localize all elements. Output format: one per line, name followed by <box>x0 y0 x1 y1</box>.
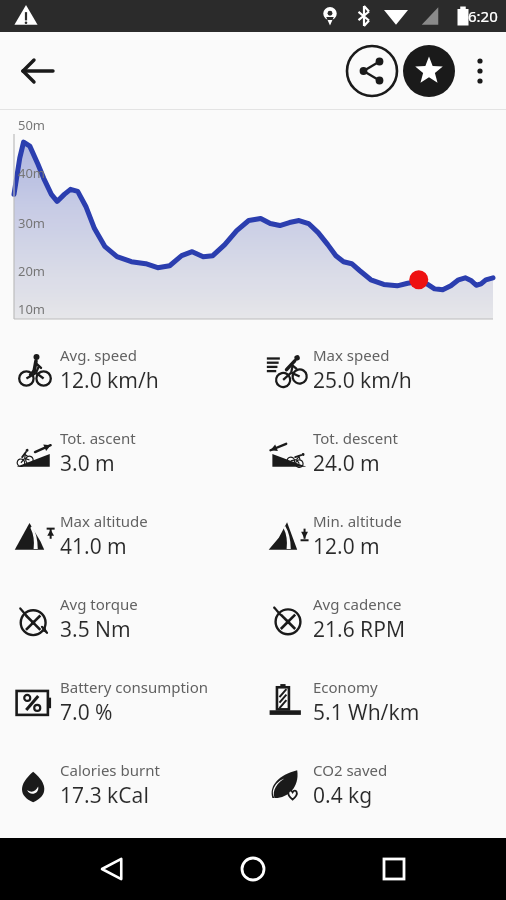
button[interactable]: Tot. descent <box>253 411 506 494</box>
staticText: 5.1 Wh/km <box>313 698 420 727</box>
staticText: 20m <box>18 262 46 280</box>
staticText: Avg cadence <box>313 594 402 614</box>
button[interactable]: Back <box>85 841 141 897</box>
button[interactable]: Favorite <box>400 42 458 100</box>
button[interactable]: CO2 saved <box>253 743 506 826</box>
button[interactable]: Home <box>225 841 281 897</box>
staticText: 24.0 m <box>313 449 380 478</box>
staticText: 17.3 kCal <box>60 781 149 810</box>
staticText: 7.0 % <box>60 698 113 727</box>
staticText: 10m <box>18 300 46 318</box>
staticText: Tot. descent <box>313 428 398 448</box>
staticText: CO2 saved <box>313 760 388 780</box>
button[interactable]: Back <box>12 45 64 97</box>
button[interactable]: Max speed <box>253 328 506 411</box>
button[interactable]: Avg torque <box>0 577 253 660</box>
staticText: Avg torque <box>60 594 138 614</box>
staticText: Min. altitude <box>313 511 402 531</box>
staticText: 41.0 m <box>60 532 127 561</box>
staticText: 6:20 <box>468 6 498 26</box>
button[interactable]: Battery consumption <box>0 660 253 743</box>
staticText: Max speed <box>313 345 390 365</box>
staticText: 12.0 m <box>313 532 380 561</box>
button[interactable]: Avg cadence <box>253 577 506 660</box>
button[interactable]: Avg. speed <box>0 328 253 411</box>
staticText: 40m <box>18 164 46 182</box>
staticText: 12.0 km/h <box>60 366 159 395</box>
staticText: 0.4 kg <box>313 781 373 810</box>
staticText: 25.0 km/h <box>313 366 412 395</box>
staticText: Avg. speed <box>60 345 137 365</box>
staticText: 50m <box>18 116 46 134</box>
button[interactable]: Tot. ascent <box>0 411 253 494</box>
staticText: Max altitude <box>60 511 148 531</box>
staticText: Economy <box>313 677 378 697</box>
staticText: Battery consumption <box>60 677 209 697</box>
staticText: 3.0 m <box>60 449 115 478</box>
staticText: Calories burnt <box>60 760 160 780</box>
button[interactable]: Share <box>344 43 400 99</box>
button[interactable]: Recent apps <box>366 841 422 897</box>
button[interactable]: Max altitude <box>0 494 253 577</box>
button[interactable]: Min. altitude <box>253 494 506 577</box>
staticText: 21.6 RPM <box>313 615 405 644</box>
staticText: Tot. ascent <box>60 428 136 448</box>
button[interactable]: Economy <box>253 660 506 743</box>
button[interactable]: More options <box>458 49 502 93</box>
button[interactable]: Calories burnt <box>0 743 253 826</box>
staticText: 30m <box>18 214 46 232</box>
staticText: 3.5 Nm <box>60 615 131 644</box>
